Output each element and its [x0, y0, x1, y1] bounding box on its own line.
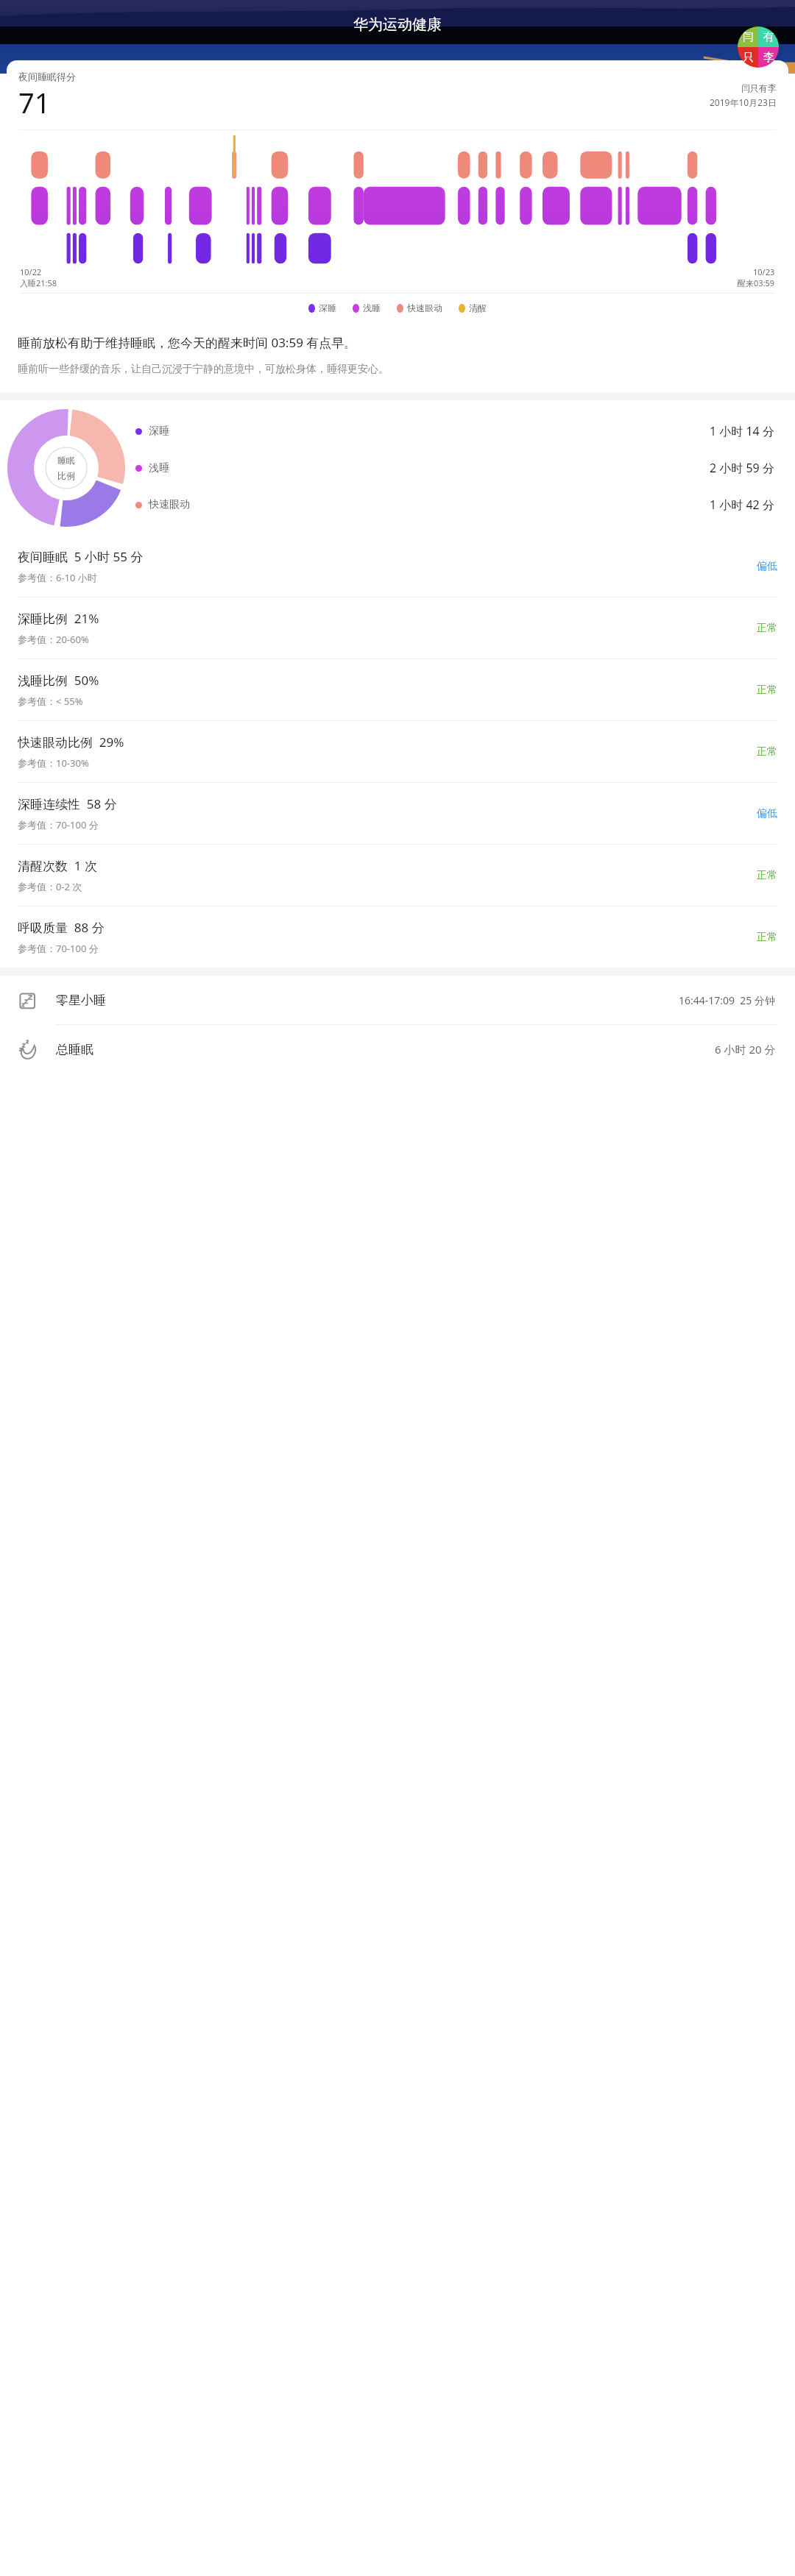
button[interactable]: 清醒次数 1 次 — [0, 845, 795, 906]
staticText: 参考值：< 55% — [18, 695, 83, 708]
staticText: 参考值：10-30% — [18, 756, 89, 770]
button[interactable]: 深睡 — [135, 423, 779, 439]
staticText: 闫 — [743, 30, 754, 44]
staticText: 浅睡 — [149, 461, 169, 475]
staticText: 深睡 — [319, 302, 336, 313]
button[interactable]: 快速眼动 — [135, 497, 779, 513]
staticText: 1 小时 42 分 — [710, 497, 774, 513]
button[interactable]: 深睡连续性 58 分 — [0, 783, 795, 844]
staticText: 参考值：20-60% — [18, 633, 89, 646]
staticText: 深睡比例 21% — [18, 610, 99, 627]
staticText: 李 — [763, 51, 774, 65]
button[interactable]: 夜间睡眠 5 小时 55 分 — [0, 536, 795, 597]
staticText: 夜间睡眠 5 小时 55 分 — [18, 548, 144, 565]
staticText: 71 — [18, 83, 51, 121]
staticText: 10/23 — [753, 266, 775, 277]
staticText: 正常 — [757, 931, 777, 944]
staticText: 参考值：6-10 小时 — [18, 571, 97, 584]
staticText: 睡眠 — [57, 455, 75, 466]
staticText: 醒来03:59 — [738, 277, 775, 288]
button[interactable]: 呼吸质量 88 分 — [0, 906, 795, 968]
button[interactable]: 快速眼动比例 29% — [0, 721, 795, 782]
button[interactable]: 浅睡比例 50% — [0, 659, 795, 720]
staticText: 2019年10月23日 — [710, 96, 777, 108]
staticText: 10/22 — [20, 266, 42, 277]
staticText: 清醒 — [469, 302, 487, 313]
staticText: 呼吸质量 88 分 — [18, 919, 105, 936]
staticText: 夜间睡眠得分 — [18, 71, 76, 82]
staticText: 浅睡比例 50% — [18, 672, 99, 689]
staticText: 偏低 — [757, 560, 777, 573]
staticText: 正常 — [757, 622, 777, 635]
staticText: 只 — [743, 51, 754, 65]
other: 总睡眠 — [19, 1039, 40, 1060]
staticText: 深睡 — [149, 425, 169, 438]
button[interactable]: 深睡比例 21% — [0, 597, 795, 659]
staticText: 睡前听一些舒缓的音乐，让自己沉浸于宁静的意境中，可放松身体，睡得更安心。 — [18, 363, 389, 376]
button[interactable]: 零星小睡 — [0, 976, 795, 1024]
staticText: 入睡21:58 — [20, 277, 57, 288]
other: 零星小睡 — [19, 990, 40, 1010]
staticText: 闫只有李 — [741, 82, 777, 93]
staticText: 快速眼动 — [149, 498, 190, 511]
staticText: 参考值：0-2 次 — [18, 880, 82, 893]
button[interactable]: 用户头像 — [738, 26, 779, 68]
staticText: 正常 — [757, 869, 777, 882]
staticText: 睡前放松有助于维持睡眠，您今天的醒来时间 03:59 有点早。 — [18, 334, 357, 351]
staticText: 快速眼动 — [407, 302, 442, 313]
staticText: 16:44-17:09 25 分钟 — [679, 993, 776, 1007]
staticText: 1 小时 14 分 — [710, 423, 774, 439]
button[interactable]: 浅睡 — [135, 460, 779, 476]
staticText: 零星小睡 — [56, 993, 106, 1008]
button[interactable]: 夜间睡眠得分 — [7, 60, 788, 322]
staticText: 深睡连续性 58 分 — [18, 795, 117, 812]
staticText: 比例 — [57, 470, 75, 481]
staticText: 有 — [763, 30, 774, 44]
staticText: 参考值：70-100 分 — [18, 818, 99, 831]
staticText: 偏低 — [757, 807, 777, 820]
button[interactable]: 总睡眠 — [0, 1025, 795, 1074]
staticText: 6 小时 20 分 — [715, 1042, 776, 1057]
staticText: 清醒次数 1 次 — [18, 857, 97, 874]
staticText: 正常 — [757, 684, 777, 697]
staticText: 华为运动健康 — [353, 15, 442, 34]
staticText: 快速眼动比例 29% — [18, 734, 124, 751]
staticText: 2 小时 59 分 — [710, 460, 774, 476]
staticText: 参考值：70-100 分 — [18, 942, 99, 955]
staticText: 总睡眠 — [56, 1042, 93, 1057]
staticText: 浅睡 — [363, 302, 381, 313]
staticText: 正常 — [757, 745, 777, 759]
